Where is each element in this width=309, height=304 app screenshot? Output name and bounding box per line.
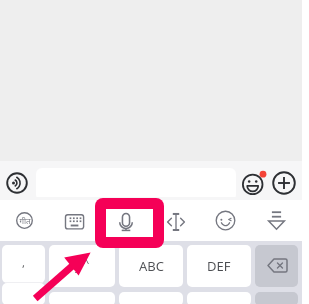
button[interactable]: [255, 292, 298, 304]
staticText: DEF: [207, 257, 231, 275]
button[interactable]: [119, 292, 183, 304]
button[interactable]: Move cursor: [165, 210, 187, 232]
button[interactable]: Voice input: [6, 172, 28, 194]
staticText: ,: [22, 255, 25, 270]
staticText: ABC: [139, 257, 164, 275]
button[interactable]: Keyboard layout: [63, 212, 85, 234]
button[interactable]: Add: [272, 171, 296, 195]
button[interactable]: [2, 283, 45, 304]
button[interactable]: Emoji: [241, 170, 267, 196]
button[interactable]: [49, 292, 115, 304]
button[interactable]: ABC: [119, 245, 183, 287]
button[interactable]: Hide keyboard: [265, 209, 288, 232]
button[interactable]: ,: [2, 245, 45, 283]
staticText: गीत: [19, 215, 31, 226]
button[interactable]: [187, 292, 251, 304]
button[interactable]: ^: [49, 245, 115, 287]
button[interactable]: Stickers: [215, 210, 236, 231]
button[interactable]: [255, 245, 298, 287]
button[interactable]: Voice typing: [114, 209, 138, 233]
staticText: _: [75, 259, 80, 274]
button[interactable]: Change language: [16, 212, 33, 229]
staticText: ^: [83, 255, 90, 270]
button[interactable]: DEF: [187, 245, 251, 287]
